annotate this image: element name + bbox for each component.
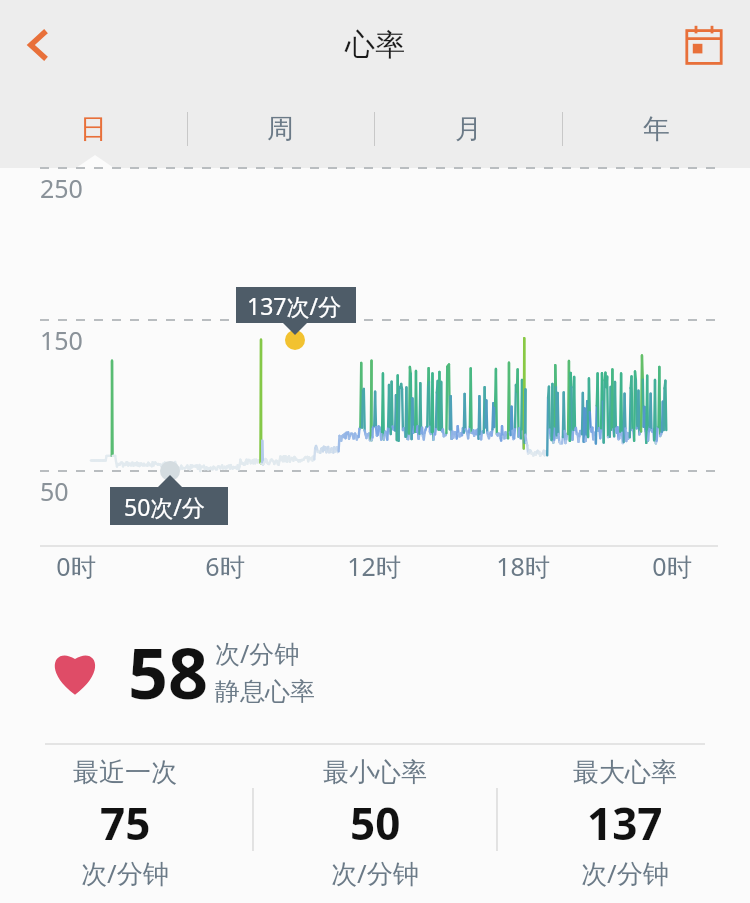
staticText: 6时 <box>205 549 245 583</box>
staticText: 最小心率 <box>323 756 427 789</box>
staticText: 50次/分 <box>124 491 205 522</box>
button[interactable]: 日 <box>0 90 187 168</box>
staticText: 次/分钟 <box>215 636 300 670</box>
staticText: 周 <box>267 112 294 146</box>
staticText: 静息心率 <box>215 676 315 707</box>
button[interactable]: 周 <box>187 90 374 168</box>
staticText: 18时 <box>496 549 550 583</box>
staticText: 50 <box>40 474 69 508</box>
staticText: 次/分钟 <box>331 855 419 891</box>
button[interactable]: 最大心率 <box>500 743 750 903</box>
staticText: 250 <box>40 171 83 205</box>
button[interactable]: Back <box>6 13 70 77</box>
button[interactable]: 年 <box>562 90 750 168</box>
staticText: 0时 <box>56 549 96 583</box>
staticText: 心率 <box>345 26 405 64</box>
button[interactable]: 最近一次 <box>0 743 250 903</box>
staticText: 150 <box>40 323 83 357</box>
staticText: 日 <box>80 112 107 146</box>
staticText: 0时 <box>652 549 692 583</box>
button[interactable]: Calendar <box>676 17 732 73</box>
staticText: 次/分钟 <box>581 855 669 891</box>
staticText: 58 <box>128 624 209 719</box>
button[interactable]: 最小心率 <box>250 743 500 903</box>
staticText: 年 <box>643 112 670 146</box>
staticText: 137次/分 <box>247 290 342 321</box>
staticText: 12时 <box>347 549 401 583</box>
button[interactable]: 月 <box>374 90 562 168</box>
staticText: 次/分钟 <box>81 855 169 891</box>
staticText: 月 <box>455 112 482 146</box>
staticText: 50 <box>350 793 401 853</box>
staticText: 最大心率 <box>573 756 677 789</box>
staticText: 75 <box>100 793 151 853</box>
staticText: 最近一次 <box>73 756 177 789</box>
staticText: 137 <box>587 793 663 853</box>
